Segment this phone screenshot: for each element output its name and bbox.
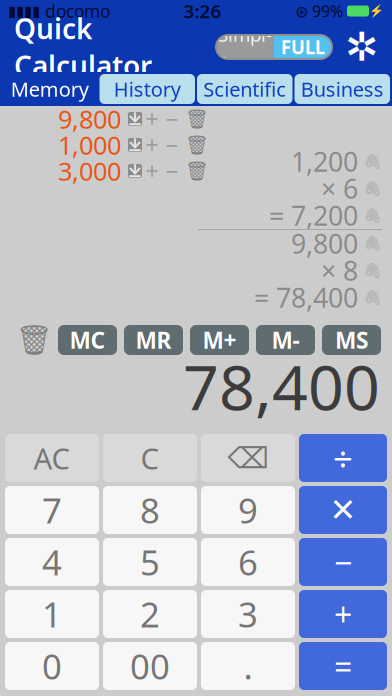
button[interactable]: 1 <box>5 590 99 638</box>
staticText: 🗑 <box>185 134 209 156</box>
staticText: 🖇 <box>363 180 382 197</box>
button[interactable]: Settings <box>346 31 378 63</box>
staticText: ⚡ <box>369 4 384 18</box>
staticText: M+ <box>202 325 236 355</box>
staticText: MR <box>135 325 171 355</box>
staticText: MC <box>69 325 105 355</box>
staticText: M- <box>271 325 299 355</box>
staticText: 🗑 <box>15 323 52 357</box>
staticText: + <box>334 593 352 635</box>
staticText: + <box>145 104 158 134</box>
staticText: = <box>334 645 352 687</box>
button[interactable]: M+ <box>190 325 249 355</box>
button[interactable]: 0 <box>5 642 99 690</box>
button[interactable]: Delete memory <box>182 135 208 155</box>
staticText: × 8 <box>321 253 358 288</box>
button[interactable]: History <box>99 74 195 104</box>
button[interactable]: Recall memory <box>121 138 142 152</box>
button[interactable]: Scientific <box>197 74 292 104</box>
button[interactable]: MS <box>322 325 381 355</box>
staticText: 0 <box>42 643 62 689</box>
button[interactable]: AC <box>5 434 99 482</box>
button[interactable]: Simple <box>216 35 274 59</box>
button[interactable]: 4 <box>5 538 99 586</box>
staticText: Simple <box>218 22 272 72</box>
staticText: 1,200 <box>291 144 358 179</box>
button[interactable]: 6 <box>201 538 295 586</box>
button[interactable]: MC <box>58 325 117 355</box>
staticText: FULL <box>281 35 325 59</box>
staticText: 3 <box>238 591 258 637</box>
button[interactable]: Recall memory <box>121 112 142 126</box>
staticText: 🖇 <box>363 207 382 224</box>
staticText: 1,000 <box>58 128 121 162</box>
staticText: ⌫ <box>227 441 268 475</box>
staticText: = 78,400 <box>254 280 358 315</box>
button[interactable]: FULL <box>274 35 332 59</box>
staticText: History <box>114 76 181 102</box>
button[interactable]: 2 <box>103 590 197 638</box>
button[interactable]: M- <box>256 325 315 355</box>
button[interactable]: ⌫ <box>201 434 295 482</box>
button[interactable]: ✕ <box>299 486 387 534</box>
button[interactable]: Memory <box>2 74 97 104</box>
staticText: 🗑 <box>185 108 209 130</box>
button[interactable]: 8 <box>103 486 197 534</box>
staticText: 9,800 <box>58 102 121 136</box>
staticText: ⤓ <box>127 135 142 155</box>
button[interactable]: − <box>299 538 387 586</box>
button[interactable]: 7 <box>5 486 99 534</box>
staticText: ÷ <box>333 435 353 481</box>
staticText: 00 <box>130 643 170 689</box>
staticText: Business <box>301 76 384 102</box>
staticText: 7 <box>42 487 62 533</box>
staticText: ⤓ <box>127 161 142 181</box>
staticText: AC <box>33 438 70 477</box>
button[interactable]: 9 <box>201 486 295 534</box>
button[interactable]: Recall memory <box>121 164 142 178</box>
staticText: 1 <box>42 591 62 637</box>
staticText: . <box>243 643 252 689</box>
button[interactable]: ÷ <box>299 434 387 482</box>
button[interactable]: Add to memory <box>142 135 162 155</box>
staticText: 🖇 <box>363 289 382 306</box>
button[interactable]: Subtract from memory <box>162 161 182 181</box>
button[interactable]: + <box>299 590 387 638</box>
button[interactable]: Add to memory <box>142 161 162 181</box>
button[interactable]: Add to memory <box>142 109 162 129</box>
button[interactable]: = <box>299 642 387 690</box>
staticText: MS <box>335 325 368 355</box>
button[interactable]: Clear all memory <box>17 324 51 356</box>
staticText: ⊛ 99% <box>295 0 343 22</box>
button[interactable]: Business <box>294 74 390 104</box>
staticText: 🖇 <box>363 153 382 170</box>
button[interactable]: 5 <box>103 538 197 586</box>
staticText: 3:26 <box>183 0 221 23</box>
staticText: ✕ <box>329 492 356 528</box>
staticText: × 6 <box>321 171 358 206</box>
button[interactable]: Delete memory <box>182 161 208 181</box>
staticText: C <box>140 438 159 477</box>
button[interactable]: Delete memory <box>182 109 208 129</box>
button[interactable]: C <box>103 434 197 482</box>
button[interactable]: MR <box>124 325 183 355</box>
button[interactable]: Subtract from memory <box>162 109 182 129</box>
button[interactable]: 00 <box>103 642 197 690</box>
staticText: 5 <box>140 539 160 585</box>
staticText: docomo <box>40 0 110 22</box>
button[interactable]: Subtract from memory <box>162 135 182 155</box>
staticText: 🗑 <box>185 160 209 182</box>
staticText: + <box>145 130 158 160</box>
staticText: + <box>145 156 158 186</box>
staticText: ⤓ <box>127 109 142 129</box>
staticText: − <box>165 104 178 134</box>
button[interactable]: . <box>201 642 295 690</box>
staticText: 9 <box>238 487 258 533</box>
staticText: 9,800 <box>291 226 358 261</box>
button[interactable]: 3 <box>201 590 295 638</box>
staticText: 🖇 <box>363 262 382 279</box>
staticText: Scientific <box>203 76 286 102</box>
staticText: Quick Calculator <box>14 10 152 84</box>
staticText: ✲ <box>345 24 379 70</box>
staticText: 🖇 <box>363 235 382 252</box>
